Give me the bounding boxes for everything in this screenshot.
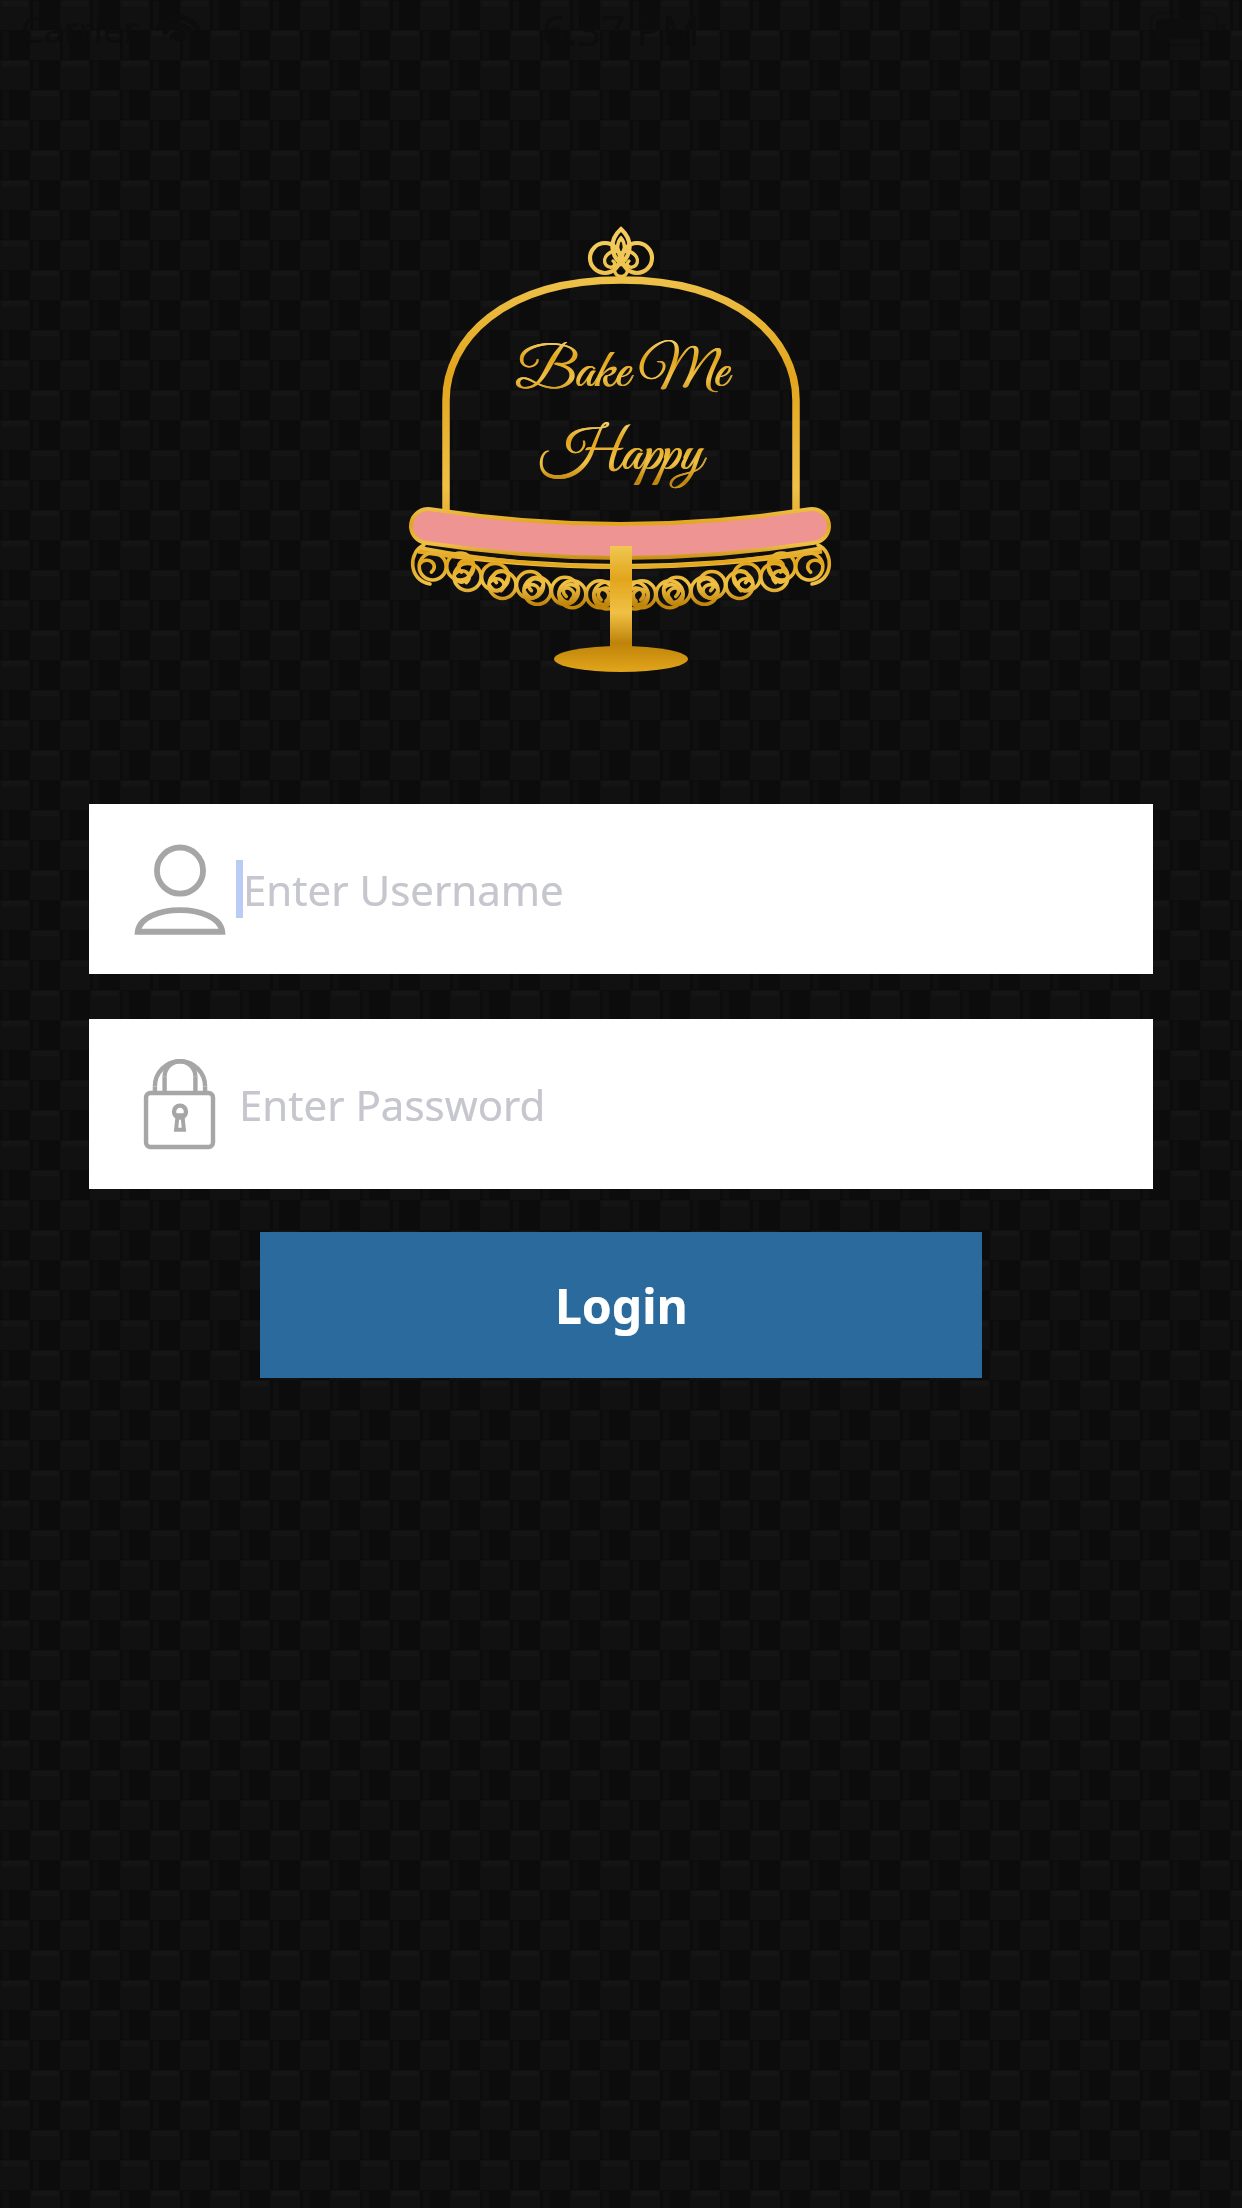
staticText: Bake Me xyxy=(515,338,728,408)
button[interactable]: Login xyxy=(260,1232,982,1378)
staticText: Enter Username xyxy=(243,861,564,918)
button[interactable]: Enter Password xyxy=(89,1019,1153,1189)
staticText: Bake Me xyxy=(516,338,729,408)
staticText: Happy xyxy=(540,420,702,493)
button[interactable]: Enter Username xyxy=(89,804,1153,974)
staticText: Enter Password xyxy=(239,1076,546,1133)
staticText: Happy xyxy=(541,420,703,493)
staticText: Login xyxy=(555,1273,688,1338)
